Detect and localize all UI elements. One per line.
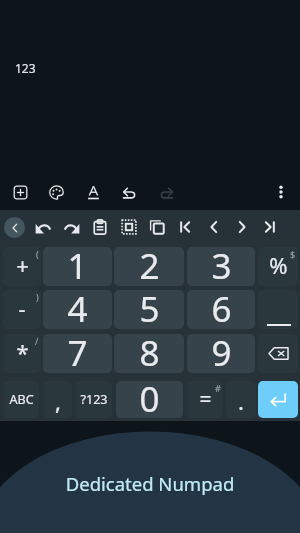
button[interactable]: 9 bbox=[187, 334, 255, 373]
staticText: 1 bbox=[67, 247, 88, 286]
button[interactable]: 2 bbox=[114, 247, 184, 286]
button[interactable]: Copy bbox=[143, 210, 171, 244]
button[interactable]: % bbox=[258, 247, 298, 286]
button[interactable]: First bbox=[171, 210, 199, 244]
button[interactable]: - bbox=[3, 290, 41, 329]
staticText: 5 bbox=[139, 290, 160, 329]
staticText: ) bbox=[36, 291, 39, 303]
button[interactable]: ABC bbox=[3, 381, 39, 418]
button[interactable]: Next bbox=[228, 210, 256, 244]
staticText: * bbox=[16, 337, 29, 367]
button[interactable]: Collapse toolbar bbox=[4, 217, 25, 238]
button[interactable]: 6 bbox=[187, 290, 255, 329]
button[interactable]: bksp bbox=[258, 334, 298, 373]
button[interactable]: = bbox=[187, 381, 223, 418]
button[interactable]: Paste bbox=[86, 210, 114, 244]
button[interactable]: Undo bbox=[29, 210, 57, 244]
button[interactable]: ?123 bbox=[75, 381, 112, 418]
staticText: Dedicated Numpad bbox=[0, 471, 300, 496]
staticText: - bbox=[18, 293, 26, 323]
staticText: 9 bbox=[211, 334, 232, 373]
staticText: 4 bbox=[67, 290, 88, 329]
staticText: 123 bbox=[15, 60, 36, 76]
staticText: $ bbox=[290, 248, 296, 260]
button[interactable]: Previous bbox=[200, 210, 228, 244]
button[interactable]: Colour bbox=[39, 173, 73, 211]
button[interactable]: 3 bbox=[187, 247, 255, 286]
button[interactable]: 4 bbox=[43, 290, 112, 329]
button[interactable]: _ bbox=[258, 290, 298, 329]
staticText: % bbox=[269, 250, 288, 280]
staticText: / bbox=[35, 335, 39, 347]
button[interactable]: + bbox=[3, 247, 41, 286]
button[interactable]: . bbox=[226, 381, 256, 418]
button[interactable]: Redo bbox=[149, 173, 183, 211]
button[interactable]: Last bbox=[256, 210, 284, 244]
button[interactable]: 7 bbox=[43, 334, 112, 373]
staticText: ABC bbox=[9, 391, 34, 408]
button[interactable]: Redo bbox=[58, 210, 86, 244]
button[interactable]: More options bbox=[265, 173, 297, 211]
staticText: 7 bbox=[67, 334, 88, 373]
button[interactable]: Text format bbox=[76, 173, 110, 211]
staticText: 8 bbox=[139, 334, 160, 373]
staticText: . bbox=[238, 386, 244, 416]
staticText: , bbox=[55, 386, 61, 416]
staticText: # bbox=[215, 382, 221, 394]
button[interactable]: 0 bbox=[116, 381, 183, 418]
button[interactable]: Undo bbox=[112, 173, 146, 211]
staticText: ( bbox=[36, 248, 39, 260]
staticText: 0 bbox=[139, 381, 160, 418]
staticText: = bbox=[199, 385, 212, 414]
button[interactable]: enter bbox=[258, 381, 298, 418]
staticText: 2 bbox=[139, 247, 160, 286]
button[interactable]: Select all bbox=[115, 210, 143, 244]
button[interactable]: 8 bbox=[114, 334, 184, 373]
staticText: 6 bbox=[211, 290, 232, 329]
button[interactable]: * bbox=[3, 334, 41, 373]
button[interactable]: 1 bbox=[43, 247, 112, 286]
staticText: + bbox=[16, 250, 29, 280]
button[interactable]: , bbox=[43, 381, 72, 418]
button[interactable]: 5 bbox=[114, 290, 184, 329]
staticText: 3 bbox=[211, 247, 232, 286]
staticText: ?123 bbox=[80, 391, 108, 408]
button[interactable]: Insert bbox=[3, 173, 37, 211]
